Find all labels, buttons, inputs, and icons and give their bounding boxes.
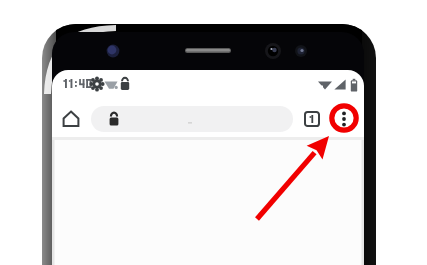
button[interactable]: Address bar <box>91 106 293 132</box>
button[interactable]: Home <box>61 108 81 128</box>
button[interactable]: Tabs <box>303 108 321 126</box>
button[interactable]: More options <box>331 105 357 131</box>
